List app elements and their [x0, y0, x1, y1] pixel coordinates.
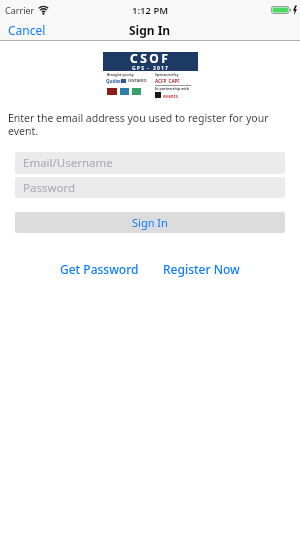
staticText: In partnership with — [155, 86, 189, 91]
staticText: Sign In — [132, 215, 168, 230]
staticText: ACFP CAPF — [155, 78, 180, 84]
staticText: CSOF — [130, 50, 171, 66]
staticText: Enter the email address you used to regi… — [8, 111, 269, 138]
staticText: Sign In — [129, 22, 171, 38]
staticText: Québec — [106, 78, 124, 84]
staticText: 1:12 PM — [132, 4, 169, 17]
staticText: Carrier — [5, 4, 35, 16]
staticText: Brought you by — [107, 72, 134, 77]
staticText: Password — [23, 180, 76, 196]
staticText: GPS - 2017 — [132, 65, 170, 72]
staticText: Email/Username — [23, 155, 113, 171]
staticText: Sponsored by — [155, 72, 179, 77]
button[interactable]: Password — [15, 177, 285, 198]
button[interactable]: Register Now — [163, 261, 240, 277]
button[interactable]: Sign In — [15, 212, 285, 233]
staticText: Cancel — [8, 22, 46, 38]
button[interactable]: Cancel — [8, 22, 46, 38]
staticText: events — [163, 93, 178, 99]
staticText: ONTARIO — [128, 78, 147, 83]
button[interactable]: Get Password — [60, 261, 139, 277]
button[interactable]: Email/Username — [15, 152, 285, 174]
